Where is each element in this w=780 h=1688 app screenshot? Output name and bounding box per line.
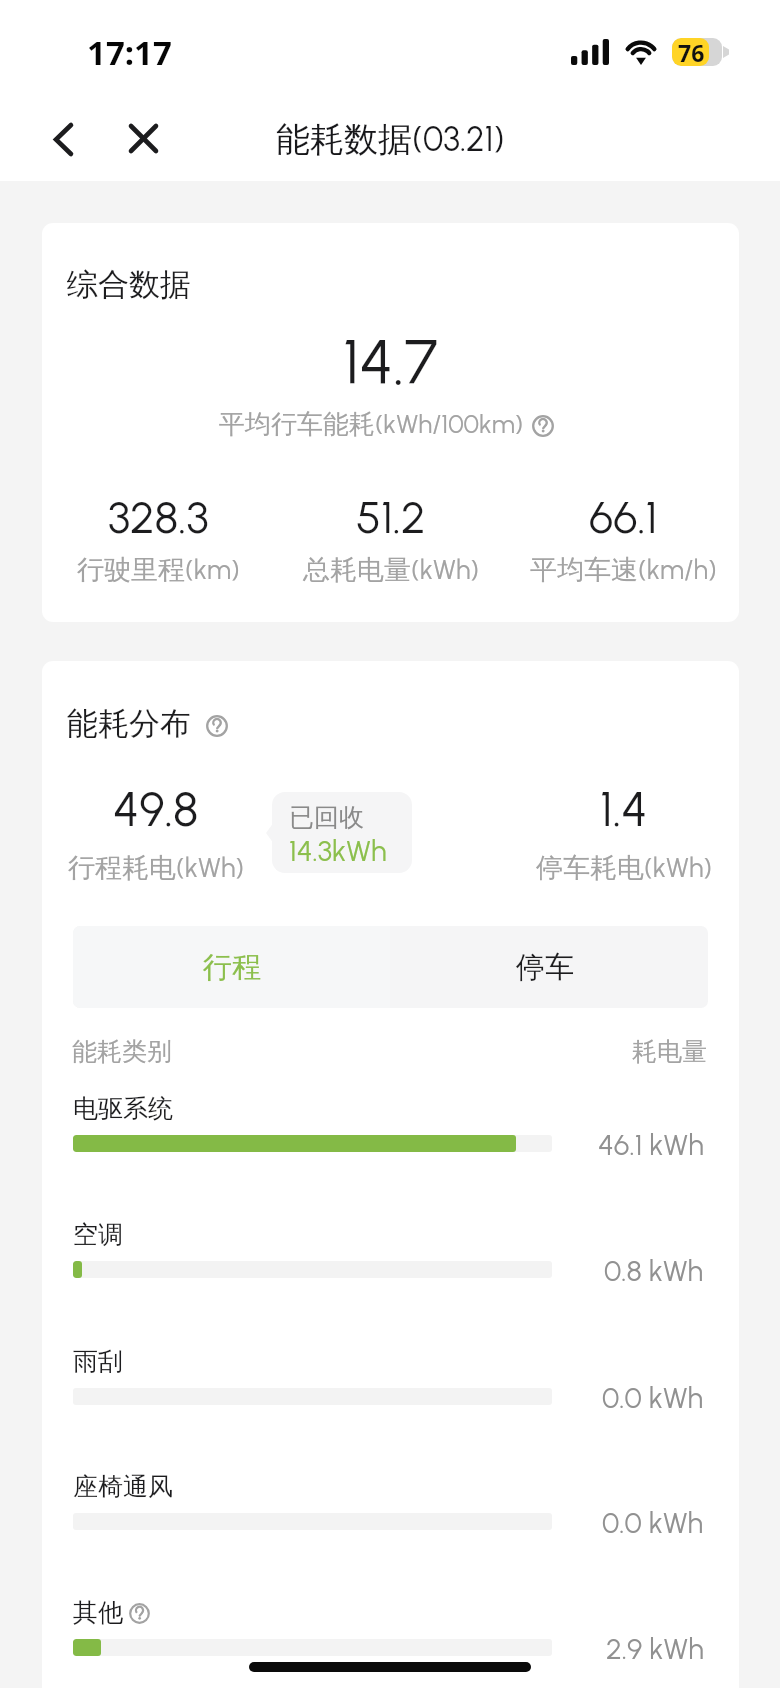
- staticText: 51.2: [356, 490, 426, 544]
- staticText: 平均车速(km/h): [530, 553, 717, 587]
- staticText: 平均行车能耗(kWh/100km): [219, 408, 524, 441]
- staticText: 能耗类别: [72, 1036, 172, 1067]
- staticText: 电驱系统: [73, 1093, 173, 1124]
- staticText: 停车耗电(kWh): [536, 851, 713, 885]
- staticText: 76: [678, 38, 705, 65]
- staticText: 46.1 kWh: [598, 1127, 704, 1162]
- staticText: 已回收: [289, 802, 364, 833]
- staticText: 0.0 kWh: [602, 1380, 704, 1415]
- staticText: 能耗分布: [67, 704, 191, 743]
- button[interactable]: Close: [115, 110, 171, 166]
- staticText: 0.8 kWh: [604, 1253, 704, 1288]
- button[interactable]: 停车: [390, 926, 708, 1008]
- button[interactable]: Back: [35, 111, 91, 167]
- staticText: 综合数据: [67, 265, 191, 304]
- staticText: 2.9 kWh: [606, 1631, 704, 1666]
- staticText: 328.3: [108, 490, 209, 544]
- staticText: 行驶里程(km): [77, 553, 240, 587]
- staticText: 总耗电量(kWh): [303, 553, 480, 587]
- staticText: 空调: [73, 1219, 123, 1250]
- staticText: 14.3kWh: [289, 833, 387, 868]
- staticText: 49.8: [113, 780, 199, 838]
- staticText: 其他: [73, 1597, 123, 1628]
- staticText: 66.1: [589, 490, 658, 544]
- button[interactable]: 行程: [73, 926, 390, 1008]
- staticText: 停车: [516, 949, 574, 986]
- staticText: 能耗数据(03.21): [276, 118, 505, 161]
- staticText: 1.4: [600, 780, 648, 838]
- staticText: 14.7: [343, 325, 438, 399]
- staticText: 行程: [203, 949, 261, 986]
- staticText: 17:17: [87, 30, 172, 75]
- staticText: 耗电量: [632, 1036, 707, 1067]
- staticText: 行程耗电(kWh): [68, 851, 245, 885]
- staticText: 座椅通风: [73, 1471, 173, 1502]
- staticText: 0.0 kWh: [602, 1505, 704, 1540]
- staticText: 雨刮: [73, 1346, 123, 1377]
